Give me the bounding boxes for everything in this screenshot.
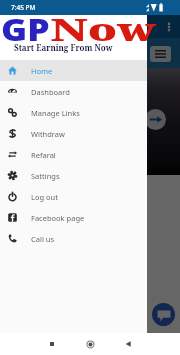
button[interactable]: Menu item: [63, 46, 84, 62]
staticText: Withdraw: [31, 129, 65, 139]
staticText: Facebook page: [31, 213, 85, 223]
button[interactable]: Recent apps: [44, 336, 60, 352]
button[interactable]: Back: [120, 336, 136, 352]
button[interactable]: Next: [145, 109, 166, 130]
button[interactable]: Open navigation drawer: [5, 19, 21, 35]
staticText: Start Earning From Now: [14, 42, 113, 53]
button[interactable]: Menu item: [34, 46, 55, 62]
staticText: Manage Links: [31, 108, 80, 118]
button[interactable]: Menu item: [5, 46, 26, 62]
button[interactable]: Menu item: [121, 46, 142, 62]
button[interactable]: Chat: [152, 303, 175, 326]
button[interactable]: Refaral: [0, 144, 147, 165]
staticText: Home: [31, 66, 53, 76]
button[interactable]: Manage Links: [0, 102, 147, 123]
button[interactable]: Menu item: [92, 46, 113, 62]
staticText: Log out: [31, 192, 58, 202]
staticText: 7:45 PM: [11, 3, 36, 12]
staticText: Dashboard: [31, 87, 70, 97]
staticText: Sattings: [31, 171, 60, 181]
button[interactable]: Log out: [0, 186, 147, 207]
button[interactable]: Withdraw: [0, 123, 147, 144]
button[interactable]: Dashboard: [0, 81, 147, 102]
button[interactable]: Home: [82, 336, 98, 352]
button[interactable]: Facebook page: [0, 207, 147, 228]
button[interactable]: Home: [0, 60, 147, 81]
staticText: GP: [1, 9, 51, 50]
staticText: Refaral: [31, 150, 56, 160]
staticText: Now: [51, 9, 156, 50]
button[interactable]: More options: [162, 20, 176, 34]
staticText: Call us: [31, 234, 54, 244]
button[interactable]: Menu item: [150, 46, 171, 62]
button[interactable]: Call us: [0, 228, 147, 249]
button[interactable]: Sattings: [0, 165, 147, 186]
